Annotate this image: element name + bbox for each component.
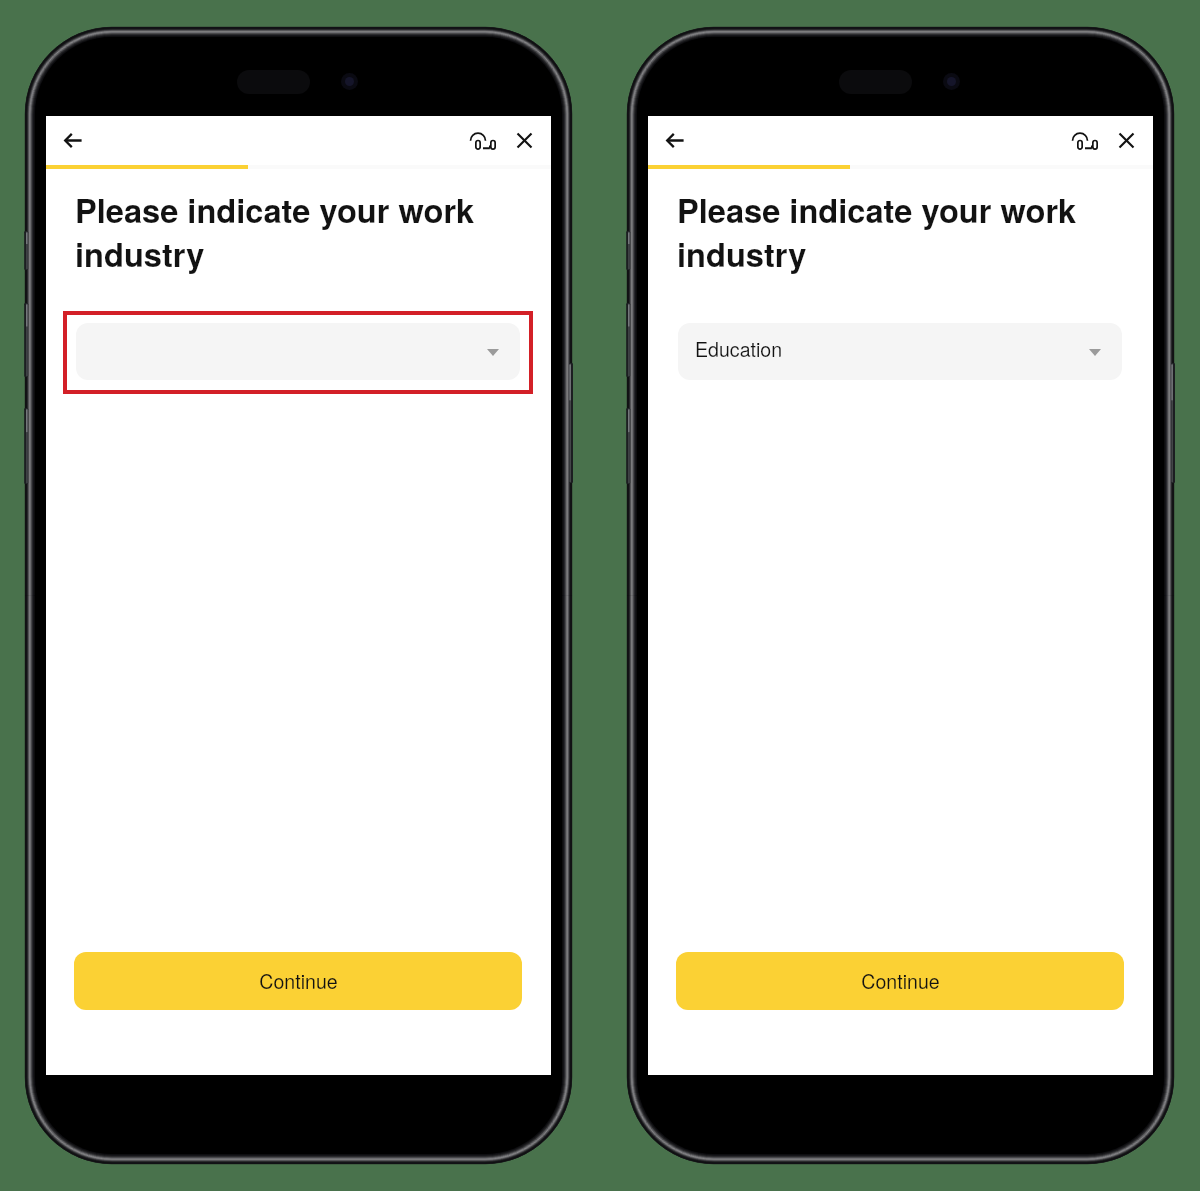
button[interactable]: Continue xyxy=(74,952,522,1010)
staticText: Education xyxy=(695,334,783,362)
button[interactable]: Close xyxy=(1107,121,1146,160)
staticText: Continue xyxy=(861,966,940,994)
staticText: Continue xyxy=(259,966,338,994)
button[interactable]: Close xyxy=(505,121,544,160)
button[interactable] xyxy=(76,323,520,380)
button[interactable]: Contact support xyxy=(466,121,505,160)
button[interactable]: Back xyxy=(655,121,694,160)
button[interactable]: Back xyxy=(53,121,92,160)
staticText: Please indicate your work industry xyxy=(75,186,485,277)
button[interactable]: Continue xyxy=(676,952,1124,1010)
button[interactable]: Education xyxy=(678,323,1122,380)
staticText: Please indicate your work industry xyxy=(677,186,1087,277)
button[interactable]: Contact support xyxy=(1068,121,1107,160)
